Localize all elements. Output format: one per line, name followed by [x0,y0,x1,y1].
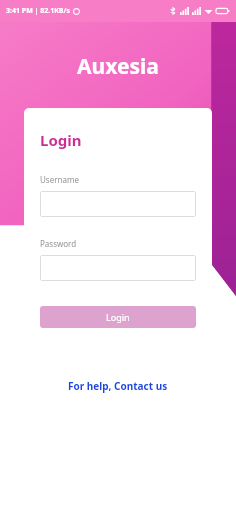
staticText: 3:41 PM | 82.1KB/s [6,6,70,16]
button[interactable]: Login [40,306,196,328]
button[interactable] [40,255,196,281]
staticText: For help, Contact us [68,379,168,393]
staticText: Username [40,174,79,185]
button[interactable]: For help, Contact us [60,376,176,396]
staticText: Password [40,238,77,249]
staticText: Login [40,130,82,150]
staticText: Login [106,311,130,323]
button[interactable] [40,191,196,217]
staticText: Auxesia [77,52,159,81]
